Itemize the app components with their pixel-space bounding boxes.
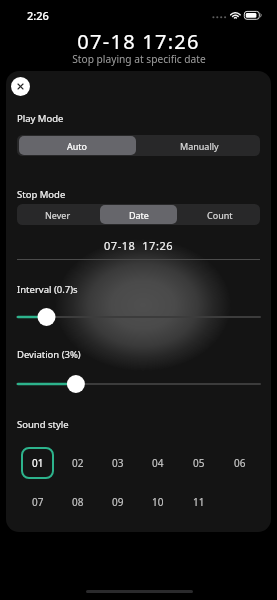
button[interactable]: 01 xyxy=(21,447,54,479)
staticText: 10 xyxy=(152,495,164,509)
staticText: 11 xyxy=(193,495,205,509)
button[interactable]: 07-18 17:26 xyxy=(17,234,260,257)
staticText: 01 xyxy=(32,456,44,470)
button[interactable]: Count xyxy=(179,204,260,225)
staticText: 02 xyxy=(72,456,84,470)
staticText: Deviation (3%) xyxy=(17,348,81,361)
button[interactable]: 05 xyxy=(182,447,215,479)
button[interactable]: 09 xyxy=(101,486,134,518)
staticText: Auto xyxy=(67,140,88,152)
staticText: 07-18 17:26 xyxy=(104,238,174,253)
staticText: Never xyxy=(45,209,71,221)
button[interactable]: 10 xyxy=(141,486,174,518)
staticText: Play Mode xyxy=(17,112,64,125)
button[interactable]: 02 xyxy=(61,447,94,479)
staticText: 2:26 xyxy=(27,8,49,23)
staticText: 04 xyxy=(152,456,164,470)
staticText: Sound style xyxy=(17,418,69,431)
staticText: 09 xyxy=(112,495,124,509)
button[interactable]: Slider xyxy=(17,308,260,326)
button[interactable]: 07 xyxy=(21,486,54,518)
staticText: Interval (0.7)s xyxy=(17,283,78,296)
button[interactable]: 04 xyxy=(141,447,174,479)
staticText: Manually xyxy=(180,140,219,152)
button[interactable]: 11 xyxy=(182,486,215,518)
staticText: Count xyxy=(207,209,233,221)
staticText: Stop playing at specific date xyxy=(72,52,206,66)
button[interactable]: Date xyxy=(98,204,179,225)
staticText: 06 xyxy=(234,456,246,470)
button[interactable]: 08 xyxy=(61,486,94,518)
button[interactable]: Manually xyxy=(138,135,260,156)
staticText: 05 xyxy=(193,456,205,470)
button[interactable]: 06 xyxy=(223,447,256,479)
button[interactable]: 03 xyxy=(101,447,134,479)
staticText: 03 xyxy=(112,456,124,470)
button[interactable]: Never xyxy=(17,204,98,225)
staticText: 07-18 17:26 xyxy=(77,28,200,55)
staticText: Date xyxy=(129,209,149,221)
staticText: 07 xyxy=(32,495,44,509)
button[interactable]: Auto xyxy=(17,135,138,156)
staticText: Stop Mode xyxy=(17,188,66,201)
button[interactable]: Close xyxy=(11,77,30,96)
button[interactable]: Slider xyxy=(17,375,260,393)
staticText: 08 xyxy=(72,495,84,509)
